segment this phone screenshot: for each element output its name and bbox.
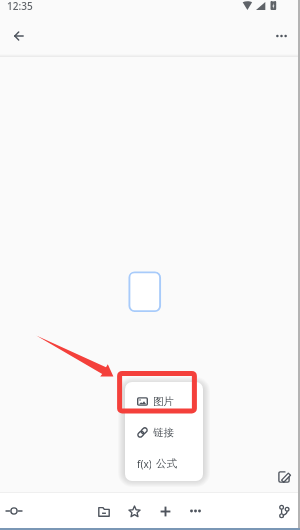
button[interactable]: Back xyxy=(5,22,33,50)
button[interactable]: Edit xyxy=(273,466,295,488)
button[interactable]: More xyxy=(185,499,206,523)
button[interactable]: f(x) xyxy=(125,448,203,479)
staticText: f(x) xyxy=(137,457,151,471)
button[interactable]: 链接 xyxy=(125,417,203,448)
button[interactable]: Favorite xyxy=(123,499,146,523)
button[interactable]: Branch xyxy=(274,499,294,523)
button[interactable]: Folder xyxy=(93,499,115,523)
staticText: 图片 xyxy=(153,395,174,408)
button[interactable]: More options xyxy=(267,22,295,50)
staticText: 公式 xyxy=(156,457,177,470)
button[interactable]: 图片 xyxy=(125,386,203,417)
staticText: 12:35 xyxy=(7,0,33,13)
staticText: 链接 xyxy=(153,426,174,439)
button[interactable]: Format xyxy=(1,499,27,523)
button[interactable]: Add xyxy=(155,499,176,523)
